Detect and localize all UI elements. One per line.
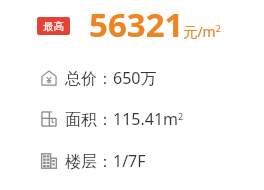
- button[interactable]: 最高: [37, 17, 70, 35]
- button[interactable]: Floor level: [41, 150, 264, 172]
- other: Floor area: [41, 111, 57, 127]
- button[interactable]: Total price: [41, 67, 264, 89]
- other: Total price: [41, 70, 57, 86]
- button[interactable]: Floor area: [41, 108, 264, 130]
- staticText: 最高: [43, 20, 64, 33]
- staticText: 面积：115.41m2: [65, 108, 184, 130]
- staticText: 总价：650万: [65, 67, 157, 89]
- staticText: 楼层：1/7F: [65, 150, 146, 172]
- staticText: 56321元/m2: [89, 2, 221, 47]
- other: Floor level: [41, 153, 57, 169]
